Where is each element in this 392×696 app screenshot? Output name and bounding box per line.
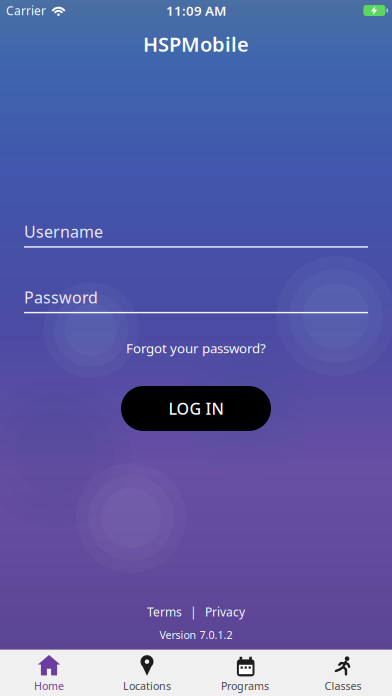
staticText: | [190, 604, 197, 620]
staticText: Carrier [6, 2, 46, 18]
button[interactable]: Programs [196, 650, 294, 696]
staticText: Programs [221, 679, 269, 693]
staticText: Version 7.0.1.2 [159, 628, 232, 642]
button[interactable]: Username [24, 221, 368, 248]
button[interactable]: Forgot your password? [126, 339, 266, 357]
staticText: Home [34, 679, 64, 693]
staticText: Privacy [205, 604, 245, 620]
button[interactable]: LOG IN [121, 386, 271, 431]
staticText: Password [24, 287, 98, 308]
staticText: 11:09 AM [166, 2, 226, 19]
staticText: Username [24, 221, 103, 242]
button[interactable]: Home [0, 650, 98, 696]
staticText: LOG IN [168, 398, 223, 419]
staticText: Terms [147, 604, 182, 620]
staticText: Locations [123, 679, 171, 693]
button[interactable]: Password [24, 287, 368, 313]
staticText: Classes [324, 679, 361, 693]
button[interactable]: Classes [294, 650, 392, 696]
button[interactable]: Locations [98, 650, 196, 696]
staticText: HSPMobile [143, 31, 249, 57]
staticText: Forgot your password? [126, 339, 266, 357]
button[interactable]: Privacy [205, 604, 245, 620]
button[interactable]: Terms [147, 604, 182, 620]
